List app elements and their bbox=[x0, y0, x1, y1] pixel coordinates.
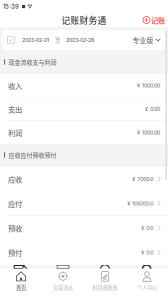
staticText: 2023-02-01 bbox=[22, 37, 49, 43]
button[interactable]: 个人中心 bbox=[126, 265, 168, 300]
staticText: 应付 bbox=[8, 198, 22, 209]
button[interactable]: 利润 bbox=[0, 121, 168, 144]
staticText: 收入 bbox=[8, 80, 22, 91]
staticText: 现金流收支与利润 bbox=[9, 58, 57, 66]
button[interactable]: 应收 bbox=[0, 167, 168, 191]
staticText: 首页 bbox=[16, 283, 26, 291]
button[interactable]: 首页 bbox=[0, 265, 42, 300]
staticText: ¥ 1000.00 bbox=[137, 129, 160, 136]
button[interactable]: 应付 bbox=[0, 191, 168, 215]
staticText: 预付 bbox=[8, 247, 22, 258]
staticText: 利润 bbox=[8, 127, 22, 138]
staticText: ¥ 0.0 bbox=[141, 225, 153, 231]
staticText: 科目表账表 bbox=[92, 283, 117, 291]
button[interactable]: 专业版 bbox=[132, 33, 161, 47]
staticText: 记账 bbox=[151, 15, 165, 25]
button[interactable]: 收入 bbox=[0, 74, 168, 97]
staticText: 专业版 bbox=[132, 35, 153, 45]
staticText: 至 bbox=[55, 36, 60, 44]
button[interactable]: 交易流水 bbox=[42, 265, 84, 300]
staticText: 个人中心 bbox=[137, 283, 157, 291]
button[interactable]: 科目表账表 bbox=[84, 265, 126, 300]
button[interactable]: 支出 bbox=[0, 97, 168, 120]
staticText: 预收 bbox=[8, 223, 22, 233]
staticText: 支出 bbox=[8, 104, 22, 114]
button[interactable]: 2023-02-01 bbox=[7, 34, 94, 46]
staticText: 15:39 bbox=[3, 3, 19, 10]
staticText: ¥ 105000.0 bbox=[127, 200, 153, 207]
staticText: ¥ 1000.00 bbox=[137, 82, 160, 89]
staticText: ¥ 0.0 bbox=[141, 249, 153, 256]
staticText: 交易流水 bbox=[53, 283, 73, 291]
staticText: 应收应付预收预付 bbox=[9, 151, 57, 159]
button[interactable]: 预付 bbox=[0, 240, 168, 264]
staticText: ¥ 7000.0 bbox=[132, 176, 153, 182]
staticText: 记账财务通 bbox=[61, 14, 106, 26]
button[interactable]: 记账 bbox=[143, 14, 168, 26]
staticText: 2023-02-28 bbox=[66, 37, 94, 43]
button[interactable]: 预收 bbox=[0, 216, 168, 240]
staticText: ¥ 0.00 bbox=[145, 106, 160, 112]
staticText: 应收 bbox=[8, 174, 22, 184]
